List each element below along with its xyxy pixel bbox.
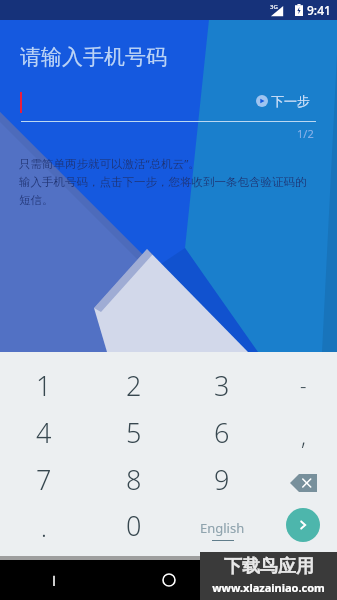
button[interactable]: 1 (16, 363, 72, 407)
staticText: www.xlazainiao.com (212, 580, 325, 595)
button[interactable]: . (16, 505, 72, 549)
button[interactable]: 6 (194, 410, 250, 454)
button[interactable]: - (275, 363, 331, 407)
button[interactable]: English (187, 513, 257, 547)
button[interactable]: , (275, 414, 331, 458)
button[interactable]: 4 (16, 410, 72, 454)
button[interactable]: 下一步 (254, 91, 312, 111)
staticText: 2 (126, 367, 142, 404)
staticText: , (301, 421, 306, 451)
staticText: English (200, 519, 245, 537)
staticText: 1 (36, 367, 52, 404)
staticText: 5 (126, 414, 142, 451)
button[interactable]: Home (139, 560, 199, 600)
staticText: 只需简单两步就可以激活“总机云”。 输入手机号码，点击下一步，您将收到一条包含验… (19, 156, 319, 208)
button[interactable]: Enter (286, 508, 320, 542)
button[interactable]: Backspace (283, 467, 323, 499)
button[interactable]: 5 (106, 410, 162, 454)
staticText: . (41, 511, 47, 544)
staticText: 请输入手机号码 (20, 44, 167, 70)
button[interactable]: 9 (194, 457, 250, 501)
button[interactable]: 0 (106, 503, 162, 547)
staticText: 下载鸟应用 (224, 555, 314, 578)
staticText: 6 (214, 414, 230, 451)
button[interactable]: 8 (106, 457, 162, 501)
staticText: - (300, 372, 307, 399)
staticText: 4 (36, 414, 52, 451)
button[interactable]: 2 (106, 363, 162, 407)
button[interactable]: 3 (194, 363, 250, 407)
staticText: 7 (36, 461, 52, 498)
button[interactable]: 7 (16, 457, 72, 501)
staticText: 9 (214, 461, 230, 498)
staticText: 3G (270, 3, 278, 11)
staticText: 1/2 (297, 126, 314, 141)
staticText: 8 (126, 461, 142, 498)
staticText: 3 (214, 367, 230, 404)
staticText: 下一步 (271, 93, 310, 109)
staticText: 0 (126, 507, 142, 544)
staticText: 9:41 (307, 2, 331, 18)
